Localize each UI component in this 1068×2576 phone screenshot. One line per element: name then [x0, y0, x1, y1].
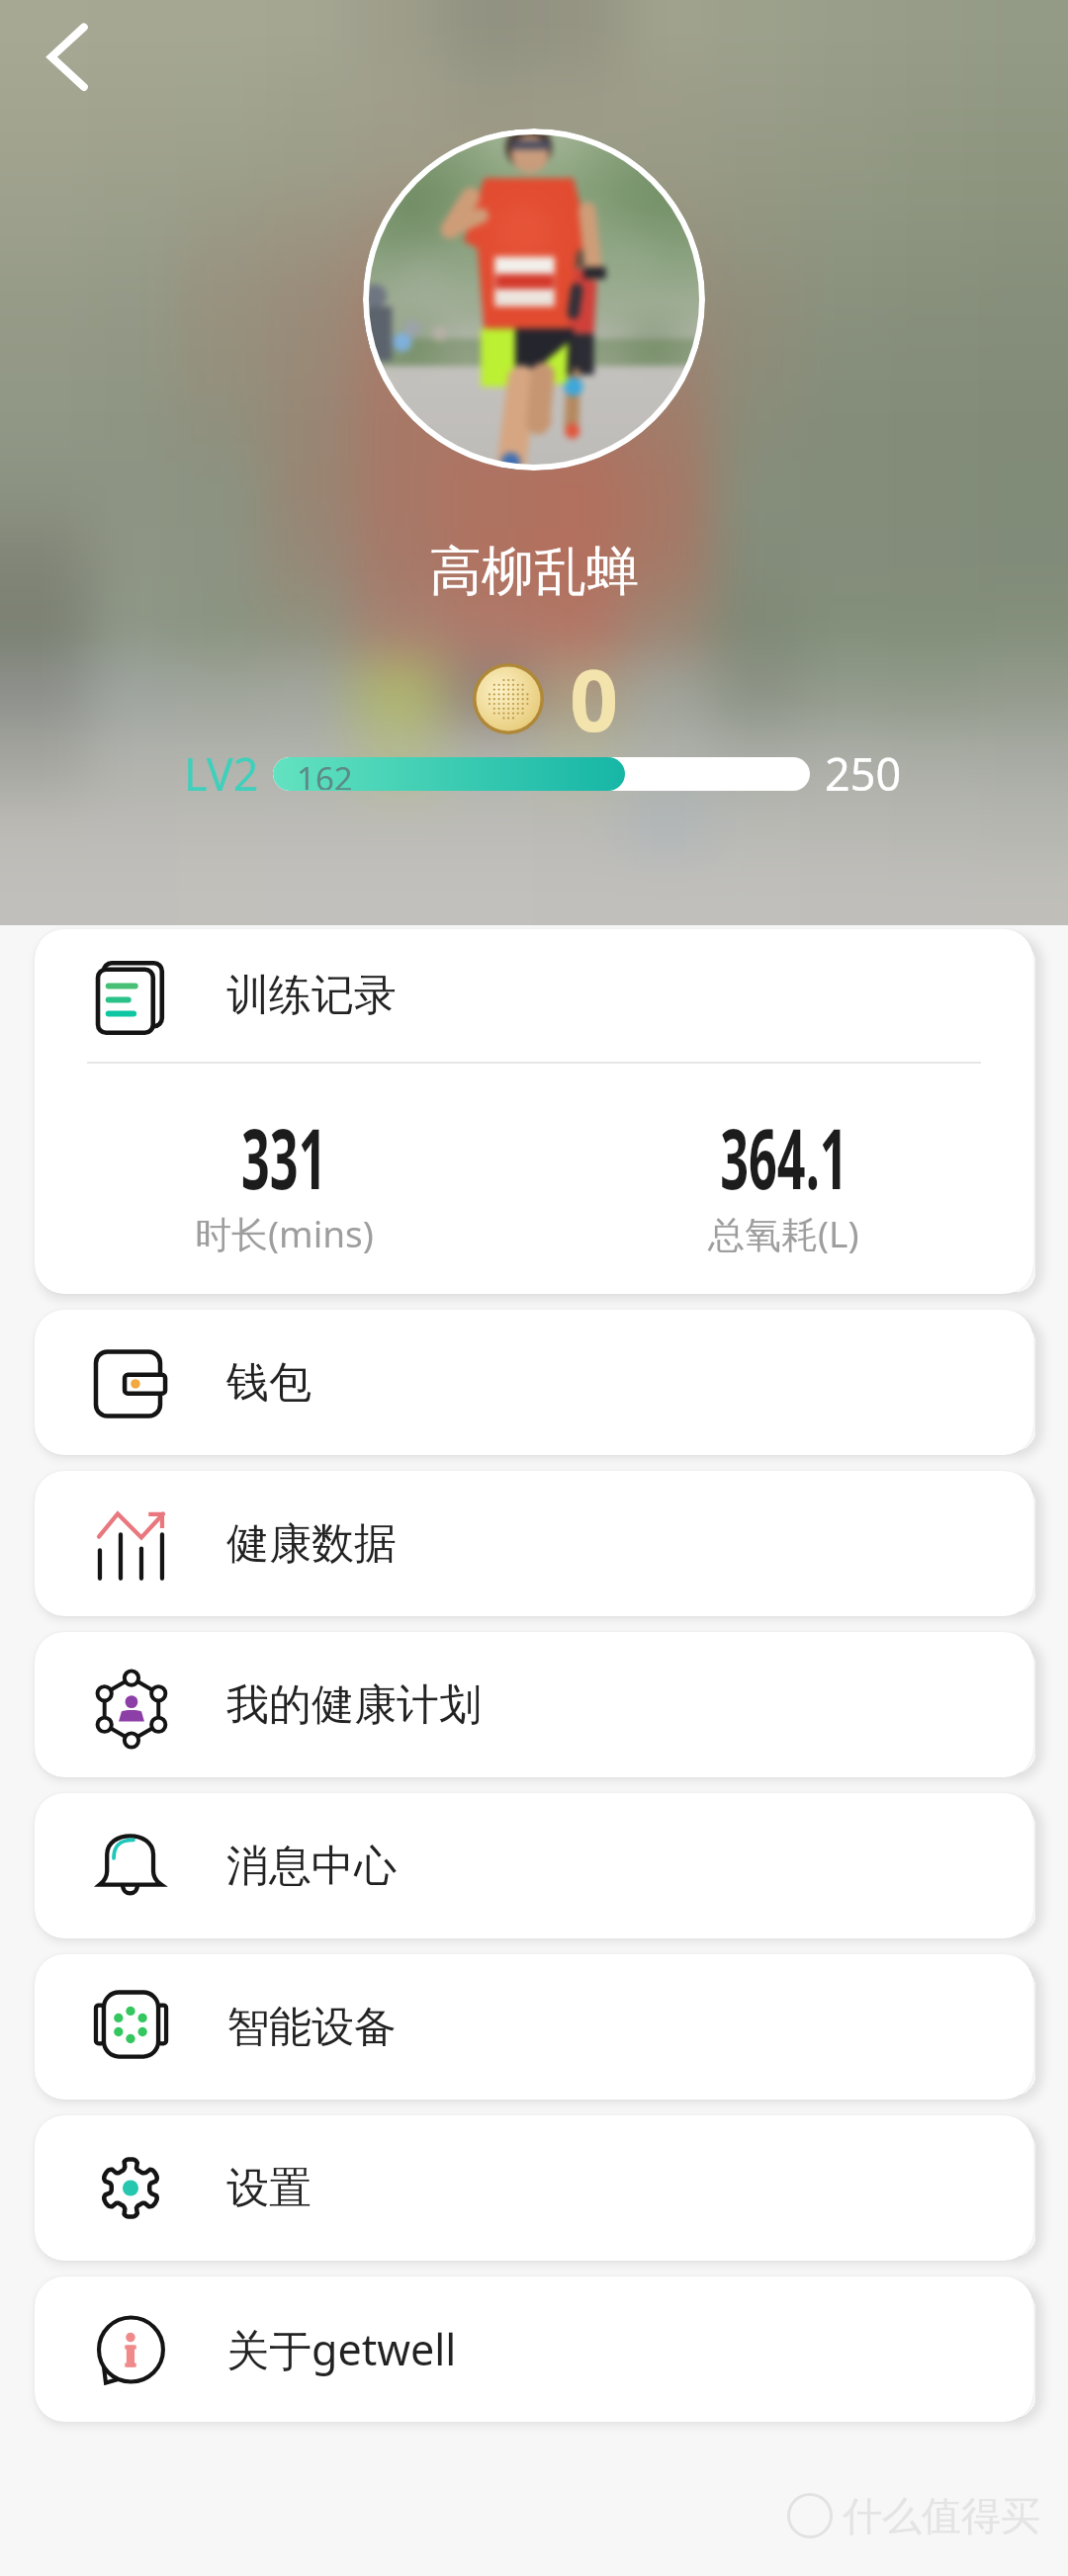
- staticText: 智能设备: [226, 2001, 397, 2054]
- staticText: 健康数据: [226, 1517, 397, 1571]
- button[interactable]: 智能设备: [35, 1954, 1033, 2100]
- button[interactable]: 消息中心: [35, 1793, 1033, 1938]
- staticText: 设置: [226, 2162, 311, 2215]
- button[interactable]: Profile photo: [363, 129, 705, 471]
- staticText: 250: [825, 743, 902, 804]
- button[interactable]: 健康数据: [35, 1471, 1033, 1616]
- staticText: 训练记录: [226, 969, 397, 1022]
- button[interactable]: 关于getwell: [35, 2276, 1033, 2422]
- staticText: 什么值得买: [843, 2491, 1040, 2540]
- staticText: 钱包: [226, 1356, 311, 1410]
- staticText: 364.1: [720, 1100, 848, 1213]
- staticText: 关于getwell: [226, 2320, 457, 2378]
- staticText: 高柳乱蝉: [429, 539, 639, 605]
- button[interactable]: 钱包: [35, 1310, 1033, 1455]
- staticText: 331: [241, 1100, 327, 1213]
- button[interactable]: 训练记录: [35, 929, 1033, 1294]
- button[interactable]: 我的健康计划: [35, 1632, 1033, 1777]
- staticText: 时长(mins): [195, 1208, 374, 1258]
- staticText: 总氧耗(L): [708, 1208, 859, 1258]
- staticText: 162: [297, 757, 353, 790]
- button[interactable]: Back: [26, 14, 109, 97]
- staticText: 消息中心: [226, 1840, 397, 1893]
- staticText: 我的健康计划: [226, 1678, 482, 1732]
- staticText: LV2: [184, 743, 259, 804]
- button[interactable]: 设置: [35, 2115, 1033, 2261]
- staticText: 0: [570, 641, 619, 756]
